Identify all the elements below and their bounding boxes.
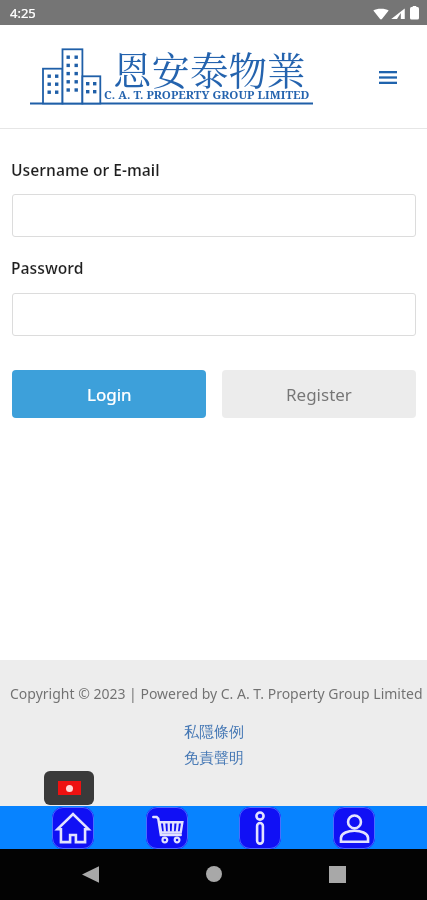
- button[interactable]: [12, 194, 416, 237]
- button[interactable]: Home: [52, 807, 94, 849]
- button[interactable]: Home: [196, 856, 232, 892]
- button[interactable]: Back: [72, 856, 108, 892]
- button[interactable]: 免責聲明: [184, 749, 244, 768]
- staticText: C. A. T. PROPERTY GROUP LIMITED: [104, 87, 310, 103]
- button[interactable]: 私隱條例: [184, 723, 244, 742]
- button[interactable]: Register: [222, 370, 416, 418]
- button[interactable]: Menu: [371, 60, 405, 94]
- button[interactable]: Login: [12, 370, 206, 418]
- staticText: Username or E-mail: [11, 159, 160, 180]
- button[interactable]: Recents: [319, 856, 355, 892]
- button[interactable]: Shop: [146, 807, 188, 849]
- staticText: Login: [87, 383, 132, 406]
- button[interactable]: Floating video: [44, 771, 94, 805]
- button[interactable]: Info: [239, 807, 281, 849]
- staticText: 恩安泰物業: [113, 41, 306, 96]
- staticText: Register: [286, 383, 352, 406]
- staticText: Password: [11, 257, 84, 278]
- staticText: 4:25: [10, 4, 36, 22]
- button[interactable]: [12, 293, 416, 336]
- staticText: Copyright © 2023 | Powered by C. A. T. P…: [10, 684, 423, 703]
- button[interactable]: Account: [333, 807, 375, 849]
